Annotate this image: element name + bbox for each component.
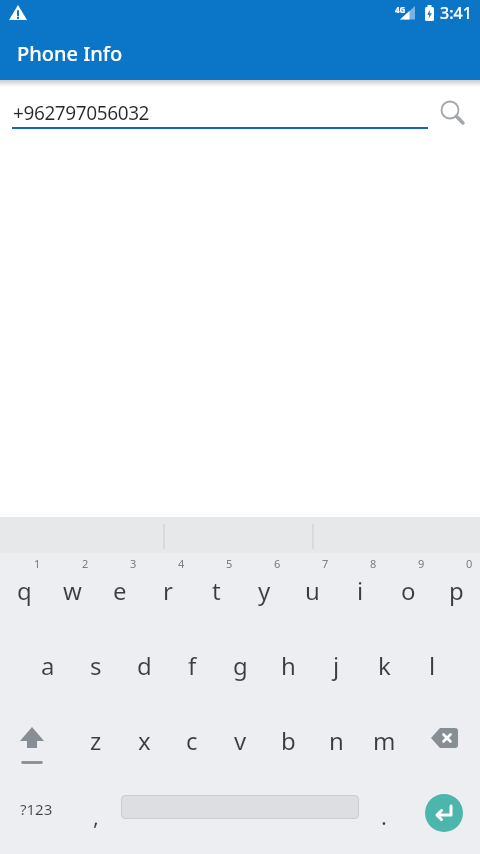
button[interactable]: z (72, 703, 120, 778)
staticText: h (281, 649, 296, 682)
staticText: b (281, 724, 296, 757)
staticText: p (449, 574, 464, 607)
staticText: j (333, 649, 340, 682)
button[interactable]: d (120, 628, 168, 703)
button[interactable] (0, 703, 72, 778)
staticText: w (63, 574, 82, 607)
button[interactable]: l (408, 628, 456, 703)
staticText: 7 (322, 556, 329, 571)
staticText: a (41, 649, 55, 682)
button[interactable]: x (120, 703, 168, 778)
staticText: z (90, 724, 102, 757)
button[interactable] (408, 778, 480, 853)
staticText: t (212, 574, 221, 607)
button[interactable]: ?123 (0, 778, 72, 853)
button[interactable]: v (216, 703, 264, 778)
staticText: o (401, 574, 416, 607)
staticText: Phone Info (17, 40, 123, 67)
button[interactable]: p (432, 553, 480, 628)
staticText: g (233, 649, 248, 682)
button[interactable]: a (24, 628, 72, 703)
button[interactable]: , (72, 778, 120, 853)
button[interactable]: u (288, 553, 336, 628)
staticText: e (113, 574, 127, 607)
button[interactable]: o (384, 553, 432, 628)
button[interactable] (120, 778, 360, 853)
staticText: u (305, 574, 320, 607)
staticText: v (234, 724, 247, 757)
button[interactable]: c (168, 703, 216, 778)
button[interactable]: n (312, 703, 360, 778)
button[interactable]: i (336, 553, 384, 628)
staticText: 0 (466, 556, 473, 571)
staticText: 3 (130, 556, 137, 571)
button[interactable]: s (72, 628, 120, 703)
staticText: k (378, 649, 391, 682)
button[interactable]: t (192, 553, 240, 628)
staticText: 4G (395, 4, 406, 15)
staticText: f (188, 649, 197, 682)
button[interactable]: r (144, 553, 192, 628)
staticText: , (93, 801, 99, 831)
staticText: 8 (370, 556, 377, 571)
button[interactable]: g (216, 628, 264, 703)
staticText: 5 (226, 556, 233, 571)
button[interactable]: j (312, 628, 360, 703)
button[interactable]: b (264, 703, 312, 778)
staticText: 2 (82, 556, 89, 571)
staticText: n (329, 724, 344, 757)
button[interactable]: q (0, 553, 48, 628)
button[interactable] (433, 92, 469, 128)
button[interactable]: h (264, 628, 312, 703)
staticText: y (258, 574, 271, 607)
button[interactable]: . (360, 778, 408, 853)
staticText: 4 (178, 556, 185, 571)
staticText: 1 (34, 556, 41, 571)
staticText: . (381, 801, 387, 831)
staticText: ?123 (20, 799, 53, 819)
button[interactable]: w (48, 553, 96, 628)
button[interactable]: m (360, 703, 408, 778)
button[interactable]: k (360, 628, 408, 703)
button[interactable] (425, 794, 463, 832)
staticText: q (17, 574, 32, 607)
staticText: x (138, 724, 151, 757)
staticText: 9 (418, 556, 425, 571)
staticText: m (373, 724, 396, 757)
staticText: r (163, 574, 173, 607)
staticText: 6 (274, 556, 281, 571)
button[interactable]: f (168, 628, 216, 703)
button[interactable] (408, 703, 480, 778)
button[interactable]: y (240, 553, 288, 628)
staticText: 3:41 (440, 2, 472, 24)
button[interactable]: e (96, 553, 144, 628)
staticText: s (90, 649, 102, 682)
staticText: i (357, 574, 364, 607)
staticText: c (186, 724, 198, 757)
button[interactable]: +962797056032 (13, 100, 150, 126)
staticText: l (429, 649, 436, 682)
staticText: d (137, 649, 152, 682)
